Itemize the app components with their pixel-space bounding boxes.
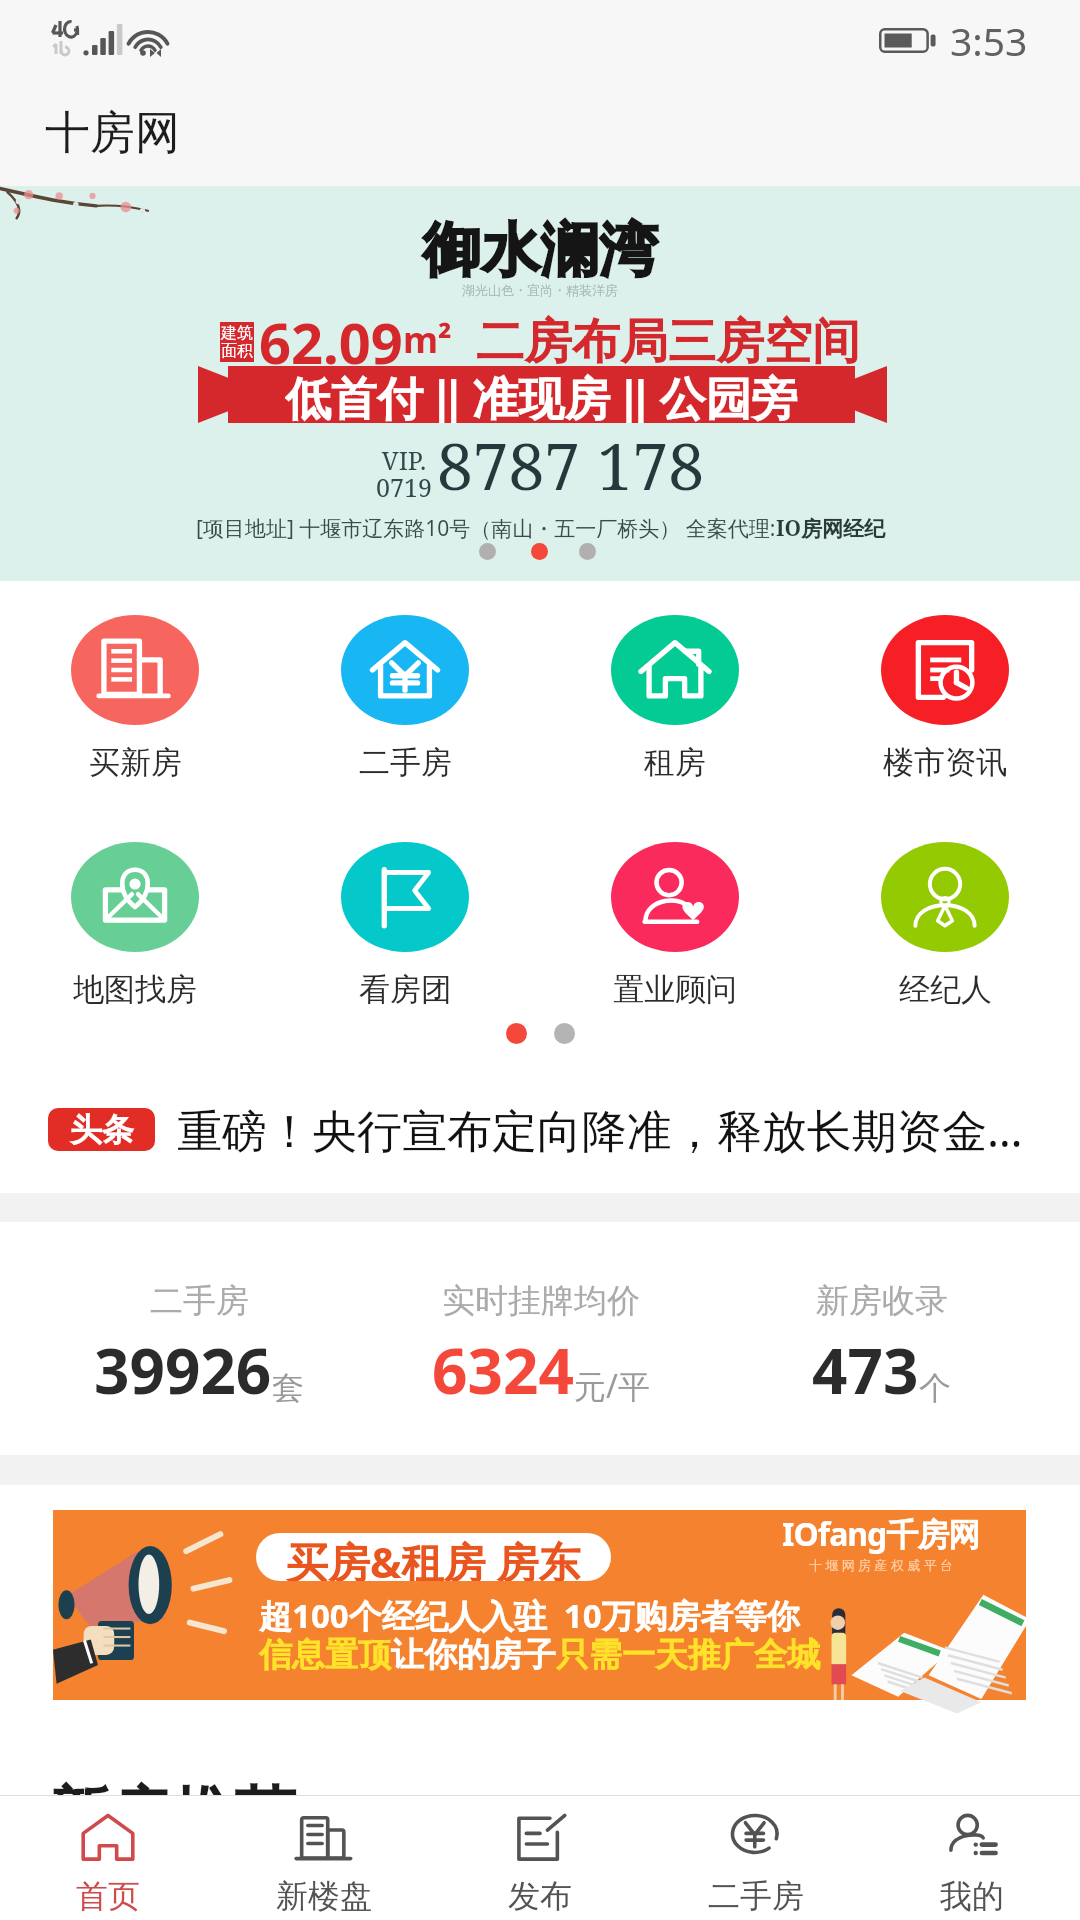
staticText: 更多 > [947,1791,1032,1832]
staticText: 39926 [94,1328,272,1412]
staticText: 只需一天推广全城 [556,1634,820,1676]
button[interactable]: 新楼盘 [216,1796,432,1920]
staticText: IO房网经纪 [776,514,885,543]
staticText: [项目地址] 十堰市辽东路10号（南山・五一厂桥头） 全案代理: [196,514,776,543]
button[interactable]: 二手房 [270,615,540,782]
staticText: 实时挂牌均价 [442,1280,640,1322]
button[interactable]: 地图找房 [0,842,270,1009]
staticText: 6324 [432,1328,574,1412]
staticText: VIP. 0719 [376,443,432,505]
staticText: 8787 178 [437,422,705,509]
staticText: 新楼盘 [276,1876,372,1916]
staticText: 二手房 [359,743,452,782]
staticText: 地图找房 [73,970,197,1009]
button[interactable]: 置业顾问 [540,842,810,1009]
staticText: m² [403,315,452,364]
button[interactable]: 租房 [540,615,810,782]
staticText: 头条 [70,1110,134,1150]
button[interactable]: Promotion banner [0,186,1080,581]
staticText: 二手房 [150,1280,249,1322]
staticText: 置业顾问 [613,970,737,1009]
staticText: 新房推荐 [48,1777,296,1855]
staticText: 让你的房子 [391,1634,556,1676]
button[interactable]: 头条 [0,1065,1080,1193]
staticText: 新房收录 [816,1280,948,1322]
staticText: 十房网 [45,105,180,162]
staticText: 御水澜湾 [422,214,658,287]
staticText: 套 [272,1368,304,1408]
button[interactable]: 买新房 [0,615,270,782]
staticText: 租房 [644,743,706,782]
staticText: 楼市资讯 [883,743,1007,782]
staticText: 经纪人 [899,970,992,1009]
staticText: 湖光山色・宜尚・精装洋房 [462,282,618,298]
staticText: 首页 [76,1876,140,1916]
staticText: 473 [812,1328,919,1412]
button[interactable]: 首页 [0,1796,216,1920]
button[interactable]: 二手房 [28,1222,370,1455]
button[interactable]: 看房团 [270,842,540,1009]
button[interactable]: 经纪人 [810,842,1080,1009]
staticText: 个 [919,1368,951,1408]
staticText: 3:53 [950,14,1028,67]
staticText: 买新房 [89,743,182,782]
button[interactable]: 二手房 [648,1796,864,1920]
button[interactable]: 我的 [864,1796,1080,1920]
staticText: 买房&租房 房东 [286,1533,581,1581]
staticText: 低首付 ‖ 准现房 ‖ 公园旁 [285,366,798,423]
staticText: 二手房 [708,1876,804,1916]
staticText: 重磅！央行宣布定向降准，释放长期资金… [177,1099,1023,1160]
staticText: 十 堰 网 房 産 权 威 平 台 [809,1556,954,1574]
staticText: 看房团 [359,970,452,1009]
staticText: 建筑 面积 [221,323,253,361]
staticText: 二房布局三房空间 [476,312,860,372]
staticText: 发布 [508,1876,572,1916]
button[interactable]: 楼市资讯 [810,615,1080,782]
staticText: 62.09 [259,304,403,380]
staticText: 信息置顶 [259,1634,391,1676]
button[interactable]: 发布 [432,1796,648,1920]
button[interactable]: 新房收录 [711,1222,1052,1455]
button[interactable]: 实时挂牌均价 [370,1222,711,1455]
button[interactable]: Advertisement [53,1510,1026,1700]
staticText: 元/平 [574,1364,650,1408]
staticText: 我的 [940,1876,1004,1916]
staticText: 超100个经纪人入驻 10万购房者等你 [259,1593,800,1638]
staticText: IOfang千房网 [782,1512,980,1556]
